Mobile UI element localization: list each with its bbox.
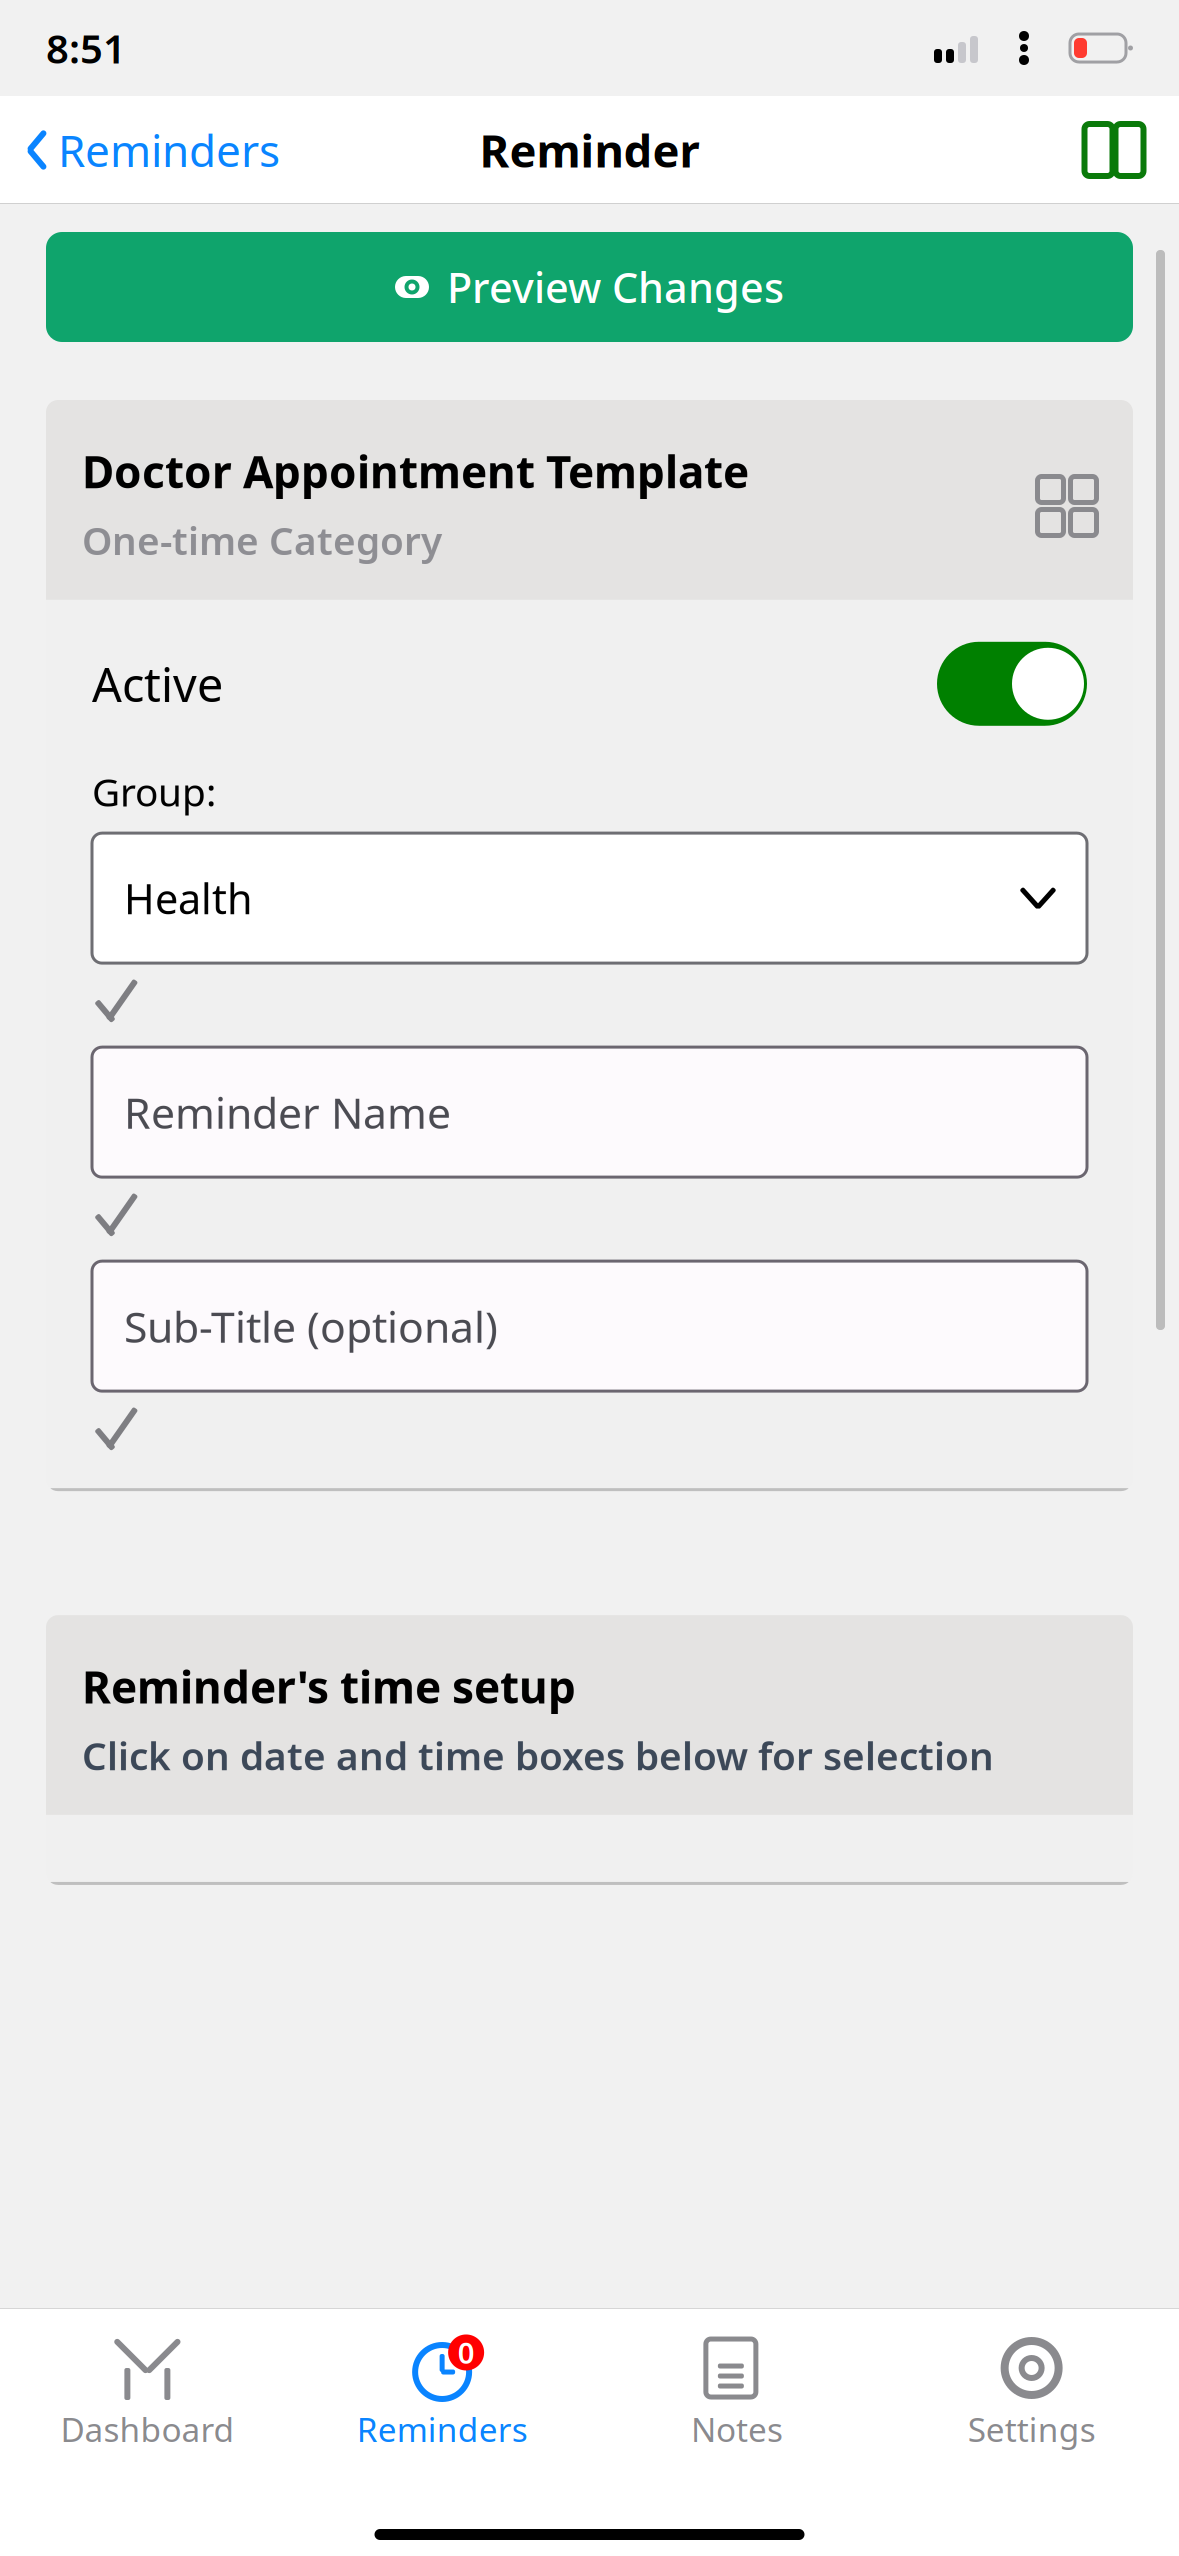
button[interactable]: Preview Changes bbox=[46, 232, 1133, 342]
button[interactable]: Sub-Title (optional) bbox=[92, 1261, 1087, 1391]
staticText: Click on date and time boxes below for s… bbox=[82, 1730, 994, 1781]
staticText: Active bbox=[92, 653, 223, 715]
staticText: Reminder's time setup bbox=[82, 1657, 576, 1715]
button[interactable]: Active bbox=[937, 642, 1087, 726]
button[interactable]: Health bbox=[92, 833, 1087, 963]
button[interactable]: Reminder Name bbox=[92, 1047, 1087, 1177]
staticText: Reminders bbox=[58, 121, 280, 179]
button[interactable]: Settings bbox=[884, 2331, 1179, 2457]
button[interactable]: Layout options bbox=[1037, 442, 1097, 536]
staticText: Dashboard bbox=[60, 2407, 234, 2451]
staticText: Preview Changes bbox=[447, 260, 784, 314]
staticText: 8:51 bbox=[46, 21, 126, 74]
staticText: Doctor Appointment Template bbox=[82, 442, 749, 500]
staticText: Group: bbox=[92, 766, 216, 817]
staticText: Health bbox=[124, 871, 253, 926]
staticText: Notes bbox=[691, 2407, 783, 2451]
staticText: Sub-Title (optional) bbox=[124, 1298, 498, 1354]
staticText: Reminders bbox=[357, 2407, 528, 2451]
staticText: One-time Category bbox=[82, 514, 442, 566]
button[interactable]: 0 bbox=[295, 2331, 590, 2457]
button[interactable]: Reminders bbox=[0, 105, 306, 195]
button[interactable]: Dashboard bbox=[0, 2331, 295, 2457]
staticText: Reminder bbox=[479, 120, 699, 180]
staticText: Reminder Name bbox=[124, 1084, 451, 1140]
staticText: 0 bbox=[458, 2333, 475, 2372]
button[interactable]: Templates bbox=[1049, 107, 1179, 193]
button[interactable]: Notes bbox=[589, 2331, 884, 2457]
staticText: Settings bbox=[968, 2407, 1096, 2451]
